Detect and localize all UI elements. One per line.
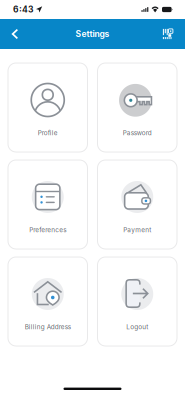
staticText: Password [123,129,152,137]
button[interactable]: Logout [97,257,177,346]
staticText: Profile [38,129,58,137]
staticText: Logout [126,323,148,331]
button[interactable]: Scan QR code [155,19,181,49]
button[interactable]: Preferences [8,160,87,249]
button[interactable]: Back [2,19,28,49]
button[interactable]: Payment [97,160,177,249]
staticText: Settings [75,29,109,39]
staticText: Preferences [29,226,66,234]
staticText: 6:43 [13,4,34,15]
button[interactable]: Password [97,63,177,152]
button[interactable]: Billing Address [8,257,87,346]
staticText: Payment [123,226,151,234]
staticText: Billing Address [25,323,71,331]
button[interactable]: Profile [8,63,87,152]
